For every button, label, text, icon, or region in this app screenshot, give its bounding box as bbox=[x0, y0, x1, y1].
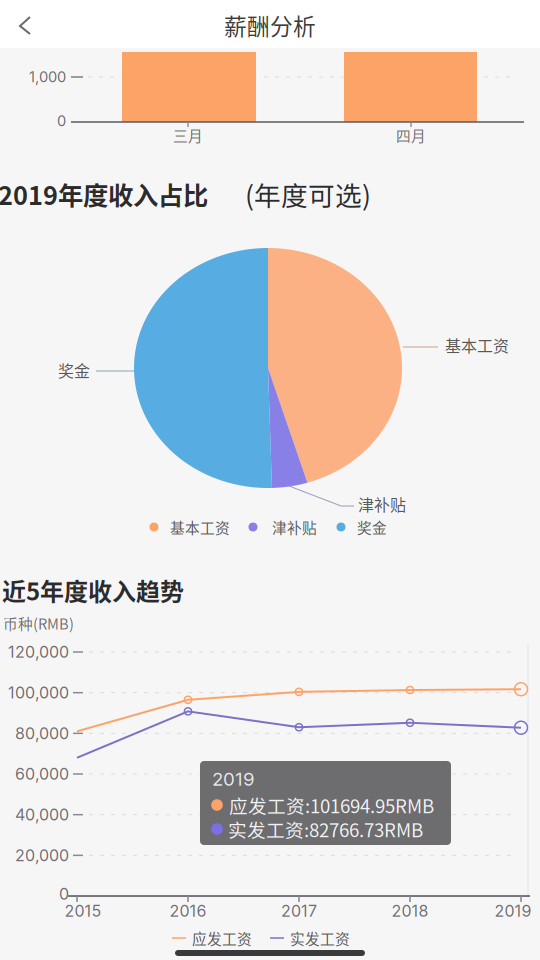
staticText: 0 bbox=[59, 884, 69, 904]
staticText: 奖金 bbox=[357, 516, 387, 538]
staticText: 应发工资:101694.95RMB bbox=[229, 791, 434, 818]
staticText: 三月 bbox=[173, 124, 203, 146]
staticText: 津补贴 bbox=[358, 492, 406, 516]
staticText: 实发工资 bbox=[290, 927, 350, 949]
staticText: 基本工资 bbox=[170, 516, 230, 538]
staticText: 2015 bbox=[64, 901, 101, 921]
button[interactable]: Back bbox=[0, 0, 540, 960]
staticText: 币种(RMB) bbox=[3, 612, 74, 634]
staticText: 20,000 bbox=[15, 846, 69, 865]
staticText: 薪酬分析 bbox=[224, 9, 316, 41]
staticText: 2019 bbox=[212, 768, 255, 790]
staticText: (年度可选) bbox=[245, 175, 371, 213]
staticText: 基本工资 bbox=[445, 333, 509, 357]
staticText: 2019 bbox=[494, 901, 531, 921]
staticText: 80,000 bbox=[15, 724, 69, 743]
staticText: 2017 bbox=[281, 901, 317, 921]
staticText: 1,000 bbox=[29, 68, 66, 86]
staticText: 2018 bbox=[391, 901, 428, 921]
staticText: 2016 bbox=[169, 901, 206, 921]
staticText: 60,000 bbox=[15, 764, 69, 784]
staticText: 近5年度收入趋势 bbox=[2, 573, 184, 607]
staticText: 0 bbox=[57, 112, 66, 130]
staticText: 40,000 bbox=[15, 805, 69, 824]
staticText: 120,000 bbox=[8, 642, 69, 662]
staticText: 奖金 bbox=[58, 358, 90, 382]
staticText: 津补贴 bbox=[272, 516, 317, 538]
staticText: 应发工资 bbox=[192, 927, 252, 949]
staticText: 四月 bbox=[396, 124, 426, 146]
staticText: 2019年度收入占比 bbox=[0, 176, 208, 212]
staticText: 实发工资:82766.73RMB bbox=[228, 815, 423, 842]
staticText: 100,000 bbox=[8, 683, 69, 702]
